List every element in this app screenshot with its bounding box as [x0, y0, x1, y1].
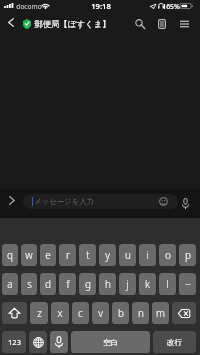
- button[interactable]: i: [139, 244, 156, 266]
- button[interactable]: b: [112, 302, 129, 324]
- staticText: n: [138, 306, 144, 320]
- button[interactable]: m: [152, 302, 169, 324]
- button[interactable]: Notes: [151, 13, 173, 35]
- staticText: w: [25, 248, 33, 262]
- staticText: 19:18: [91, 1, 111, 11]
- button[interactable]: f: [59, 273, 76, 295]
- button[interactable]: Menu: [173, 13, 195, 35]
- staticText: c: [78, 306, 83, 320]
- button[interactable]: v: [92, 302, 109, 324]
- staticText: d: [45, 277, 51, 291]
- staticText: z: [37, 306, 42, 320]
- staticText: h: [105, 277, 111, 291]
- button[interactable]: n: [132, 302, 149, 324]
- button[interactable]: a: [2, 273, 18, 295]
- staticText: メッセージを入力: [34, 197, 94, 206]
- button[interactable]: u: [119, 244, 136, 266]
- button[interactable]: e: [40, 244, 56, 266]
- button[interactable]: z: [30, 302, 48, 324]
- button[interactable]: メッセージを入力: [23, 194, 178, 209]
- button[interactable]: 改行: [153, 331, 196, 353]
- button[interactable]: x: [51, 302, 69, 324]
- staticText: g: [85, 277, 91, 291]
- staticText: x: [57, 306, 63, 320]
- button[interactable]: h: [99, 273, 116, 295]
- staticText: t: [86, 248, 90, 262]
- button[interactable]: Change keyboard: [29, 331, 47, 353]
- staticText: s: [27, 277, 32, 291]
- button[interactable]: j: [119, 273, 136, 295]
- staticText: v: [98, 306, 103, 320]
- button[interactable]: Search: [129, 13, 151, 35]
- button[interactable]: g: [79, 273, 96, 295]
- button[interactable]: Show more: [0, 189, 23, 212]
- staticText: docomo: [16, 2, 42, 11]
- staticText: 郵便局【ぽすくま】: [34, 19, 111, 30]
- button[interactable]: 123: [2, 331, 26, 353]
- staticText: r: [66, 248, 70, 262]
- button[interactable]: c: [72, 302, 89, 324]
- staticText: f: [66, 277, 70, 291]
- staticText: u: [125, 248, 131, 262]
- staticText: m: [156, 306, 165, 320]
- button[interactable]: Voice input: [50, 331, 68, 353]
- staticText: e: [45, 248, 51, 262]
- button[interactable]: Voice message: [180, 189, 190, 218]
- button[interactable]: s: [21, 273, 37, 295]
- button[interactable]: r: [59, 244, 76, 266]
- button[interactable]: Shift: [2, 302, 27, 324]
- button[interactable]: d: [40, 273, 56, 295]
- button[interactable]: p: [179, 244, 196, 266]
- button[interactable]: 空白: [71, 331, 150, 353]
- staticText: 65%: [166, 2, 180, 11]
- staticText: l: [166, 277, 169, 291]
- staticText: 改行: [167, 338, 182, 347]
- staticText: −: [185, 277, 191, 291]
- button[interactable]: Back: [2, 13, 20, 31]
- button[interactable]: l: [159, 273, 176, 295]
- staticText: 123: [8, 337, 21, 347]
- button[interactable]: y: [99, 244, 116, 266]
- staticText: y: [105, 248, 110, 262]
- button[interactable]: o: [159, 244, 176, 266]
- button[interactable]: −: [179, 273, 196, 295]
- button[interactable]: t: [79, 244, 96, 266]
- button[interactable]: w: [21, 244, 37, 266]
- button[interactable]: k: [139, 273, 156, 295]
- staticText: i: [146, 248, 149, 262]
- button[interactable]: Backspace: [172, 302, 196, 324]
- staticText: j: [126, 277, 129, 291]
- button[interactable]: q: [2, 244, 18, 266]
- staticText: 空白: [103, 338, 118, 347]
- staticText: q: [7, 248, 13, 262]
- staticText: a: [7, 277, 13, 291]
- staticText: p: [185, 248, 191, 262]
- staticText: k: [145, 277, 150, 291]
- staticText: b: [118, 306, 124, 320]
- staticText: o: [165, 248, 171, 262]
